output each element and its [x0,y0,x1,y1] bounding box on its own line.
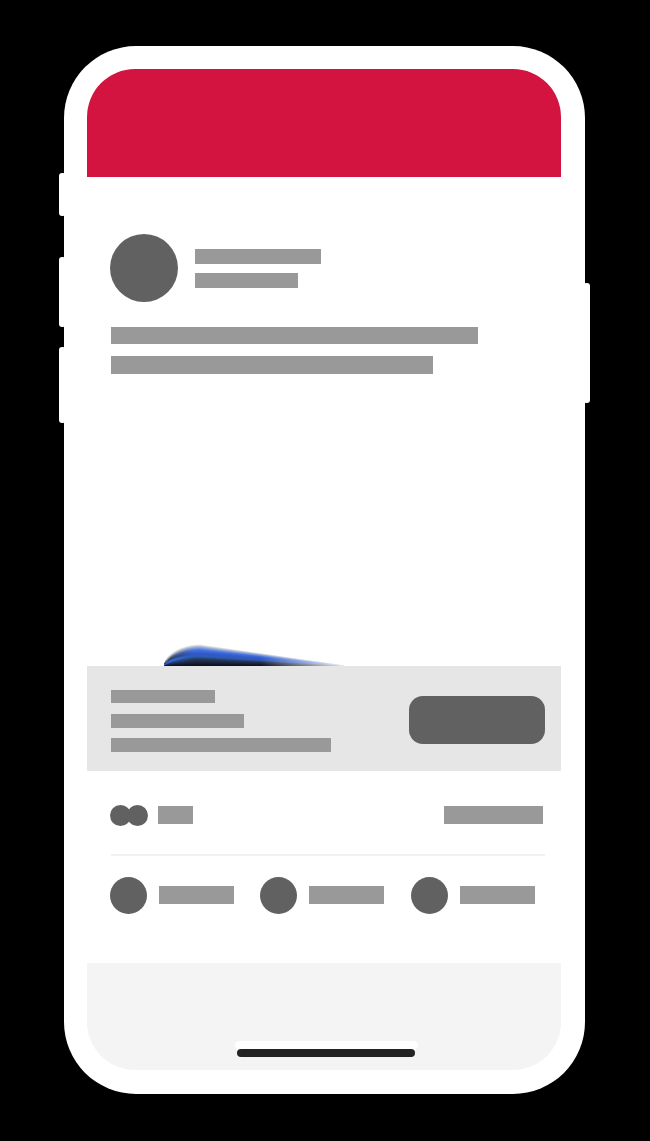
button[interactable]: Participants [87,795,561,835]
button[interactable]: Summary card [87,666,561,771]
button[interactable]: Quick action [110,875,234,915]
button[interactable]: Volume up [59,257,66,327]
button[interactable]: Top app bar [87,69,561,177]
button[interactable]: Quick action [260,875,384,915]
button[interactable]: Power [583,283,590,403]
button[interactable]: Volume down [59,347,66,423]
button[interactable]: Home [237,1049,415,1057]
button[interactable]: Account header [110,234,325,302]
button[interactable]: Quick action [411,875,535,915]
button[interactable]: Bottom navigation [87,963,561,1070]
button[interactable]: Silent switch [59,173,66,216]
button[interactable]: Primary action [409,696,545,744]
